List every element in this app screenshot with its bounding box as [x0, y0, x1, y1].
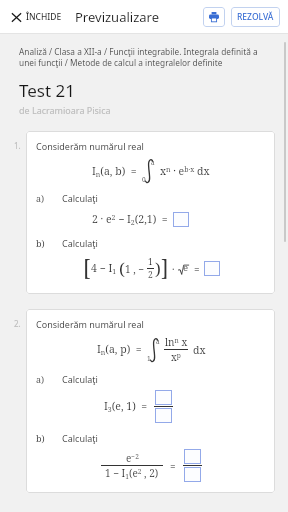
staticText: In(a, b) = — [92, 164, 137, 179]
staticText: 1 — [147, 354, 151, 363]
staticText: [ — [83, 254, 91, 283]
staticText: 4 − I1 — [91, 261, 117, 276]
button[interactable]: Answer field — [173, 212, 189, 227]
button[interactable]: Answer field — [184, 467, 201, 482]
staticText: lnn x — [165, 335, 188, 349]
button[interactable]: Print — [203, 7, 225, 27]
staticText: xn · eb·x dx — [160, 164, 210, 178]
staticText: Calculaţi — [62, 373, 98, 385]
staticText: Calculaţi — [62, 237, 98, 249]
staticText: a) — [36, 373, 45, 385]
staticText: a — [156, 337, 160, 346]
staticText: REZOLVĂ — [237, 11, 274, 23]
staticText: a — [151, 158, 155, 167]
staticText: Calculaţi — [62, 192, 98, 204]
staticText: 1 , − — [125, 262, 145, 276]
staticText: ÎNCHIDE — [26, 11, 62, 23]
staticText: e — [183, 261, 189, 274]
staticText: a) — [36, 192, 45, 204]
staticText: dx — [193, 343, 206, 357]
staticText: ( — [119, 257, 125, 280]
staticText: 2 · e2 − I2(2,1) = — [92, 212, 168, 227]
button[interactable]: Considerăm numărul real — [26, 131, 275, 294]
staticText: Analiză / Clasa a XII-a / Funcţii integr… — [19, 46, 274, 68]
staticText: 1. — [14, 140, 21, 151]
button[interactable]: Close — [9, 6, 64, 28]
staticText: Considerăm numărul real — [36, 140, 144, 152]
staticText: Calculaţi — [62, 432, 98, 444]
button[interactable]: Answer field — [204, 261, 220, 276]
staticText: In(a, p) = — [97, 342, 142, 357]
staticText: ) — [155, 257, 161, 280]
staticText: 1 − I1(e2 , 2) — [105, 466, 159, 481]
button[interactable]: Considerăm numărul real — [26, 309, 275, 493]
staticText: b) — [36, 237, 45, 249]
staticText: Test 21 — [19, 79, 75, 102]
staticText: · — [172, 262, 175, 276]
staticText: I3(e, 1) = — [104, 399, 148, 414]
staticText: 0 — [142, 175, 146, 184]
button[interactable]: Answer field — [155, 390, 172, 405]
staticText: xp — [171, 350, 181, 364]
staticText: 1 — [148, 256, 153, 268]
staticText: = — [194, 262, 200, 276]
staticText: b) — [36, 432, 45, 444]
staticText: e−2 — [126, 451, 139, 465]
staticText: 2 — [148, 269, 153, 281]
staticText: ] — [161, 254, 169, 283]
staticText: de Lacramioara Pisica — [19, 104, 111, 116]
button[interactable]: Answer field — [155, 408, 172, 423]
staticText: Considerăm numărul real — [36, 318, 144, 330]
button[interactable]: REZOLVĂ — [231, 7, 280, 27]
button[interactable]: Answer field — [184, 449, 201, 464]
staticText: = — [170, 459, 176, 473]
staticText: Previzualizare — [75, 8, 159, 26]
staticText: 2. — [14, 318, 21, 329]
